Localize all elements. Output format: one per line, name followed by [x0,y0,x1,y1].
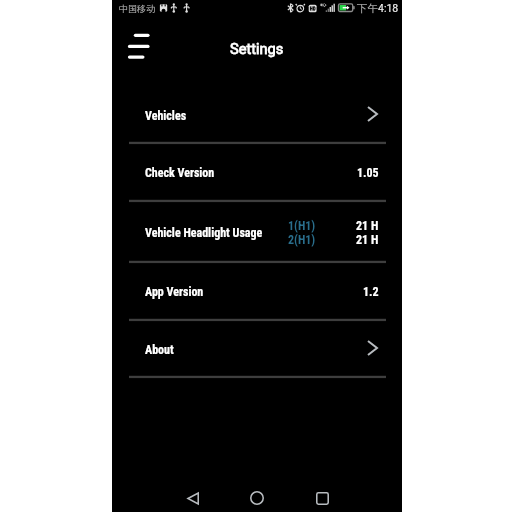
staticText: 下午 [357,2,378,15]
staticText: 21 H [356,219,379,233]
button[interactable]: Vehicles [112,85,402,142]
button[interactable]: About [112,319,402,377]
button[interactable]: Home [239,480,275,512]
staticText: About [145,343,174,357]
staticText: 中国移动 [119,3,155,14]
staticText: 1.2 [363,285,379,299]
staticText: 1(H1) [288,219,316,233]
staticText: 4:18 [378,2,399,14]
staticText: Check Version [145,166,215,180]
staticText: 2(H1) [288,233,316,247]
button[interactable]: App Version [112,261,402,319]
staticText: Vehicle Headlight Usage [145,226,263,240]
staticText: 21 H [356,233,379,247]
staticText: Settings [230,40,284,57]
staticText: App Version [145,285,204,299]
staticText: 1.05 [357,166,379,180]
button[interactable]: Vehicle Headlight Usage [112,200,402,262]
staticText: Vehicles [145,109,187,123]
button[interactable]: Open navigation menu [124,29,152,57]
button[interactable]: Back [175,480,211,512]
button[interactable]: Check Version [112,142,402,200]
button[interactable]: Recent apps [304,480,340,512]
